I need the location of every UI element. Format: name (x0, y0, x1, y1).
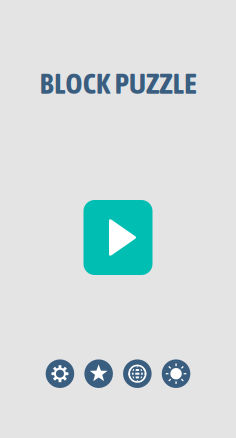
button[interactable]: Settings (46, 359, 74, 388)
button[interactable]: Play (83, 200, 152, 275)
button[interactable]: Language (123, 359, 152, 388)
button[interactable]: Brightness (162, 359, 190, 388)
button[interactable]: Rate (84, 359, 113, 388)
staticText: BLOCK PUZZLE (40, 67, 196, 100)
